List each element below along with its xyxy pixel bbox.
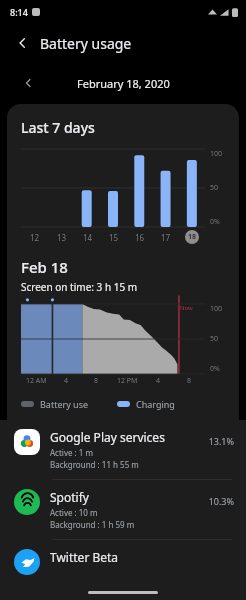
staticText: 14: [83, 232, 93, 243]
staticText: 10.3%: [208, 495, 234, 507]
staticText: 12: [30, 232, 40, 243]
staticText: 0%: [210, 217, 220, 227]
staticText: Feb 18: [21, 257, 68, 277]
staticText: 8: [187, 376, 192, 386]
staticText: 100: [210, 304, 223, 314]
staticText: Google Play services: [50, 429, 165, 445]
staticText: 17: [161, 232, 171, 243]
staticText: 0%: [210, 364, 220, 374]
staticText: 50: [210, 183, 219, 193]
staticText: Last 7 days: [21, 118, 95, 137]
staticText: Background : 1 h 59 m: [50, 519, 135, 530]
staticText: Spotify: [50, 489, 89, 505]
staticText: 8: [94, 376, 99, 386]
staticText: 4: [64, 376, 69, 386]
staticText: 18: [188, 232, 197, 242]
button[interactable]: Google Play services: [0, 420, 246, 479]
staticText: Now: [180, 304, 193, 312]
staticText: Twitter Beta: [50, 549, 119, 565]
staticText: 4: [156, 376, 161, 386]
staticText: 12 AM: [26, 376, 47, 386]
staticText: 50: [210, 334, 219, 344]
staticText: February 18, 2020: [77, 76, 170, 91]
staticText: Active : 10 m: [50, 507, 98, 518]
staticText: Background : 11 h 55 m: [50, 459, 139, 470]
staticText: 16: [135, 232, 145, 243]
staticText: 15: [109, 232, 119, 243]
button[interactable]: Spotify: [0, 480, 246, 539]
staticText: Battery usage: [40, 34, 132, 53]
staticText: Active : 1 m: [50, 447, 93, 458]
staticText: 13.1%: [208, 435, 234, 447]
staticText: 12 PM: [117, 376, 138, 386]
staticText: Screen on time: 3 h 15 m: [21, 280, 138, 294]
button[interactable]: Back: [8, 29, 36, 57]
button[interactable]: Twitter Beta: [0, 540, 246, 584]
staticText: 8:14: [10, 6, 28, 18]
staticText: Battery use: [40, 398, 89, 410]
staticText: 100: [210, 149, 223, 159]
staticText: 13: [57, 232, 67, 243]
button[interactable]: Previous day: [16, 71, 40, 95]
staticText: Charging: [136, 398, 175, 410]
